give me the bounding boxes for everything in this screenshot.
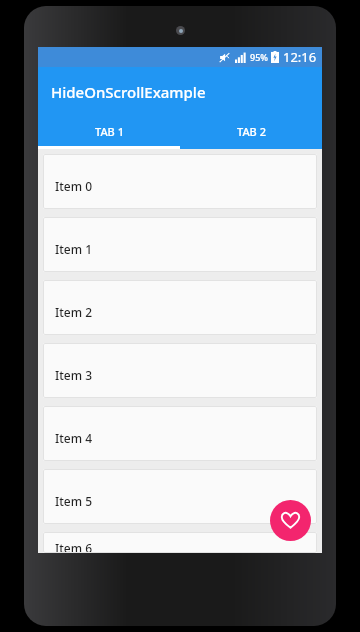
button[interactable]: Item 6 — [43, 532, 317, 553]
button[interactable]: Item 0 — [43, 154, 317, 209]
staticText: 95% — [250, 51, 268, 63]
button[interactable]: TAB 2 — [180, 116, 322, 146]
staticText: Item 5 — [55, 493, 93, 509]
button[interactable]: Item 2 — [43, 280, 317, 335]
button[interactable]: TAB 1 — [38, 116, 180, 146]
staticText: TAB 2 — [237, 124, 266, 139]
staticText: Item 2 — [55, 304, 93, 320]
button[interactable]: Item 1 — [43, 217, 317, 272]
staticText: Item 4 — [55, 430, 93, 446]
staticText: TAB 1 — [95, 124, 124, 139]
button[interactable]: Favorite — [270, 500, 311, 541]
staticText: Item 1 — [55, 241, 93, 257]
staticText: 12:16 — [283, 48, 317, 66]
staticText: Item 6 — [55, 540, 93, 553]
staticText: Item 3 — [55, 367, 93, 383]
staticText: Item 0 — [55, 178, 93, 194]
button[interactable]: Item 5 — [43, 469, 317, 524]
button[interactable]: Item 4 — [43, 406, 317, 461]
button[interactable]: Item 3 — [43, 343, 317, 398]
staticText: HideOnScrollExample — [51, 82, 206, 102]
